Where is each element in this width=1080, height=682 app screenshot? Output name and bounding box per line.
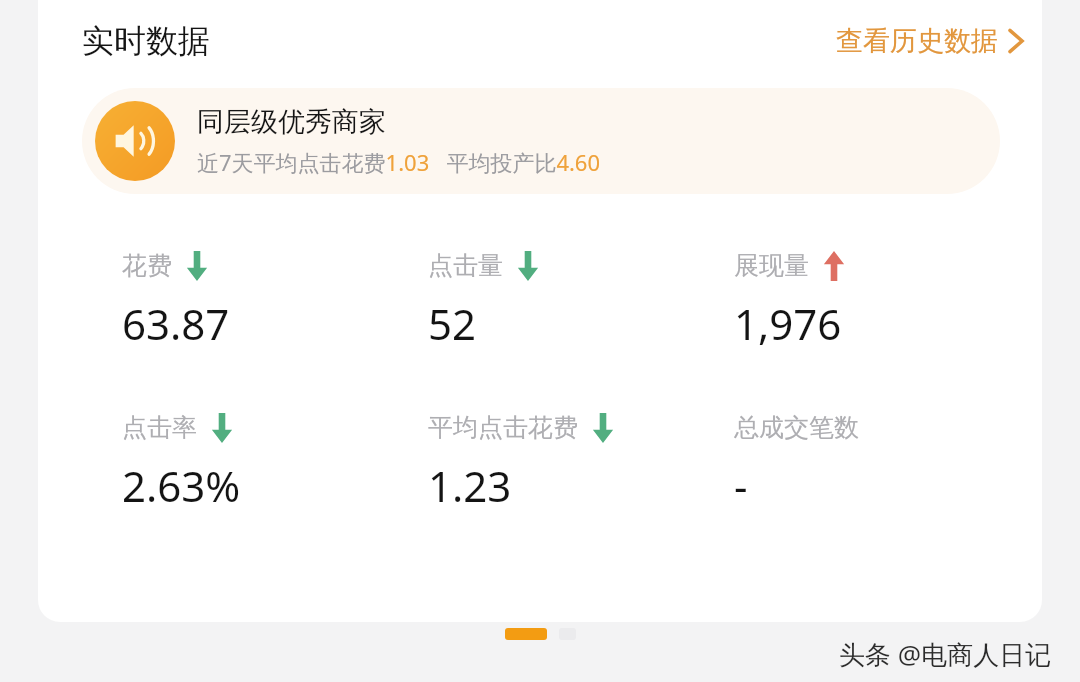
button[interactable]: 点击量 [428, 250, 734, 352]
other: 公告 [95, 101, 175, 181]
staticText: 1,976 [734, 295, 842, 352]
button[interactable] [505, 628, 547, 640]
staticText: 花费 [122, 250, 172, 281]
staticText: - [734, 457, 748, 514]
button[interactable]: 花费 [122, 250, 428, 352]
staticText: 头条 @电商人日记 [839, 636, 1052, 672]
button[interactable]: 查看历史数据 [830, 18, 1030, 64]
staticText: 2.63% [122, 457, 241, 514]
staticText: 平均点击花费 [428, 412, 578, 443]
staticText: 1.23 [428, 457, 512, 514]
button[interactable]: 展现量 [734, 250, 1040, 352]
button[interactable]: 公告 [82, 88, 1000, 194]
button[interactable]: 点击率 [122, 412, 428, 514]
staticText: 总成交笔数 [734, 412, 859, 443]
staticText: 近7天平均点击花费1.03 平均投产比4.60 [197, 147, 601, 177]
staticText: 实时数据 [82, 21, 210, 61]
staticText: 点击率 [122, 412, 197, 443]
button[interactable]: 总成交笔数 [734, 412, 1040, 514]
staticText: 展现量 [734, 250, 809, 281]
staticText: 查看历史数据 [836, 24, 998, 58]
button[interactable]: 平均点击花费 [428, 412, 734, 514]
staticText: 63.87 [122, 295, 230, 352]
staticText: 同层级优秀商家 [197, 105, 386, 139]
staticText: 52 [428, 295, 477, 352]
staticText: 点击量 [428, 250, 503, 281]
